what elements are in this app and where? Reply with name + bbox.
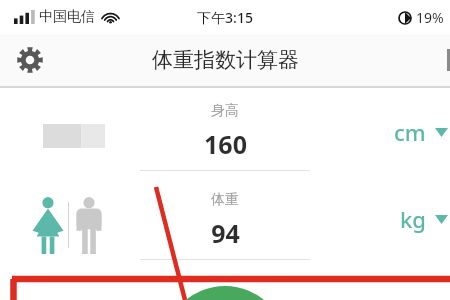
staticText: 身高 (211, 102, 239, 120)
staticText: 体重指数计算器 (152, 47, 299, 73)
staticText: 94 (211, 216, 240, 250)
button[interactable]: kg (400, 204, 450, 234)
staticText: 下午3:15 (197, 8, 253, 27)
staticText: cm (394, 117, 426, 147)
button[interactable]: Settings (10, 40, 50, 80)
button[interactable]: cm (394, 117, 450, 147)
staticText: kg (400, 204, 426, 234)
staticText: 中国电信 (39, 8, 95, 26)
button[interactable]: 体重 (140, 191, 310, 260)
button[interactable]: Female (28, 194, 68, 256)
staticText: 160 (204, 127, 247, 161)
button[interactable]: 身高 (140, 102, 310, 171)
staticText: 19% (416, 8, 444, 27)
button[interactable]: More (442, 47, 450, 73)
staticText: 体重 (211, 191, 239, 209)
button[interactable]: Male (69, 194, 109, 256)
